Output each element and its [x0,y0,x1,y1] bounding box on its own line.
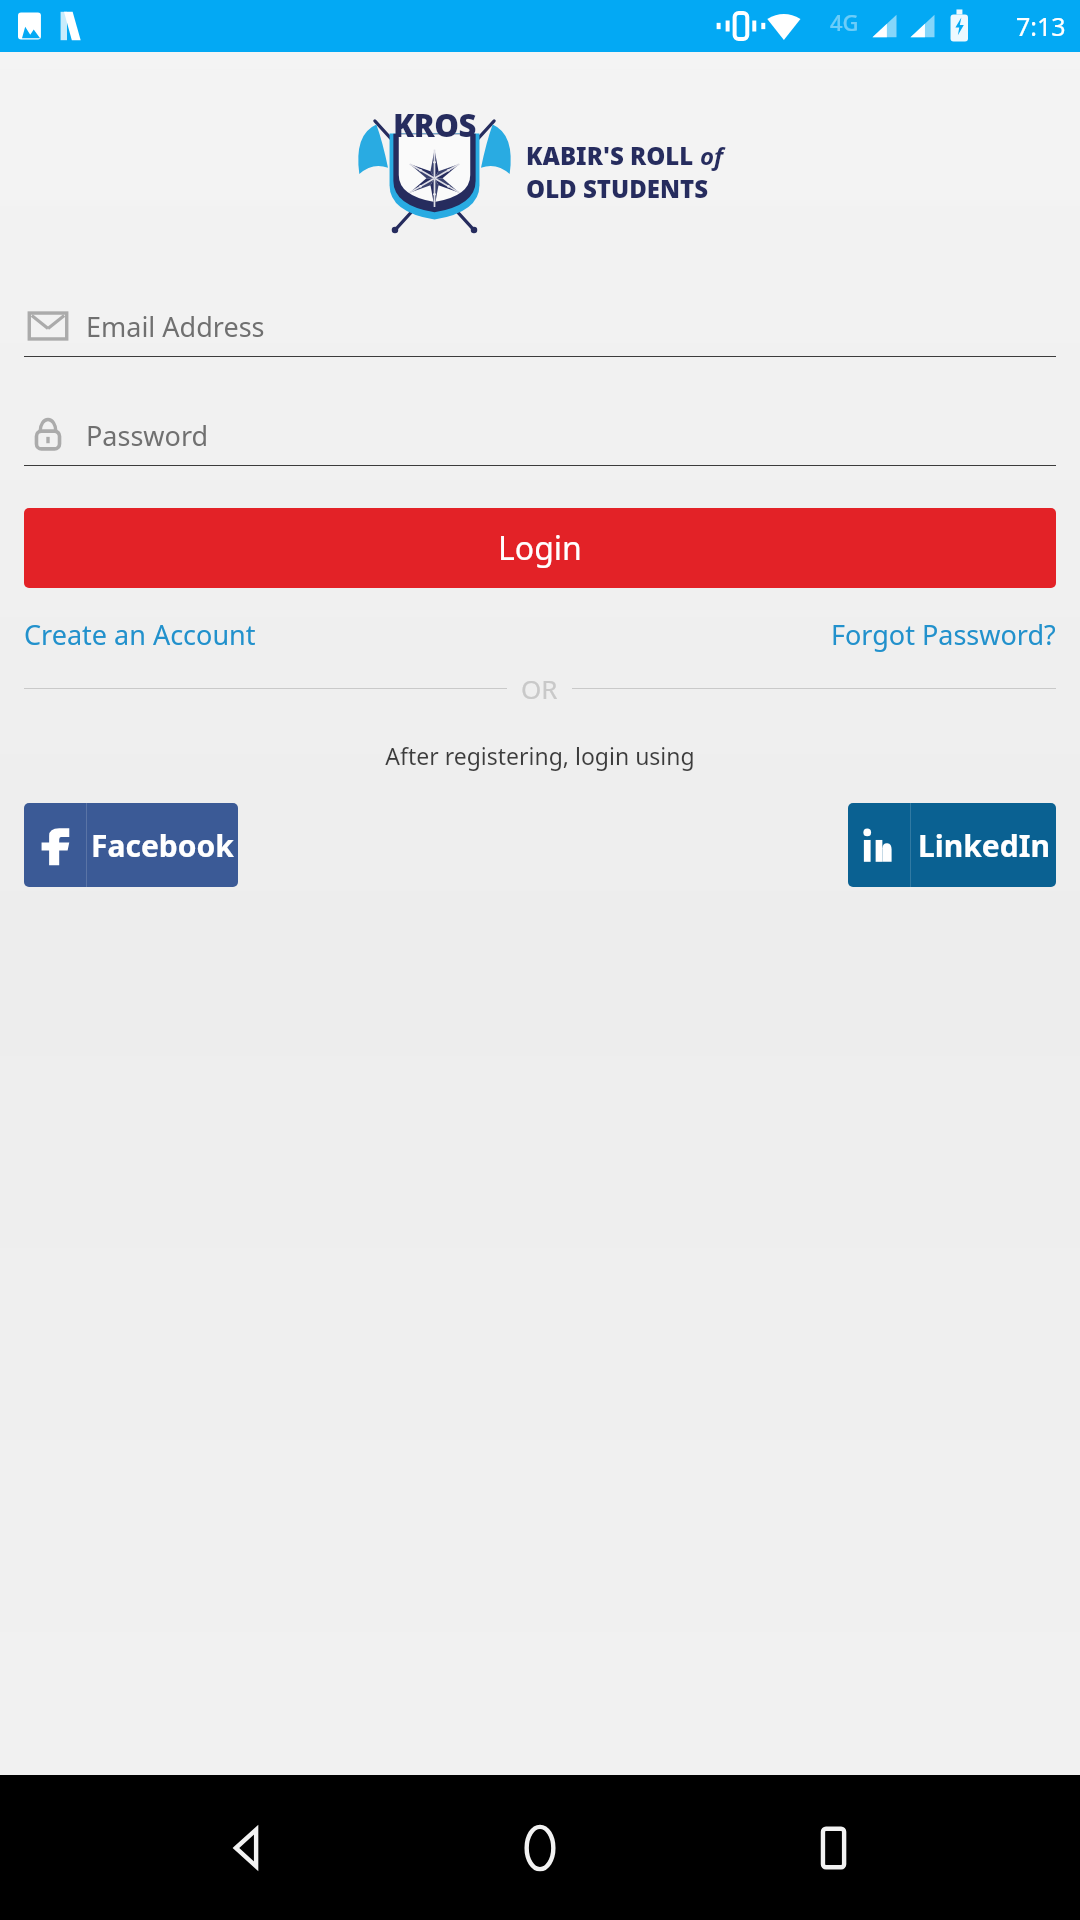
button[interactable]: Login with LinkedIn [848,803,1056,887]
staticText: LinkedIn [918,825,1050,866]
button[interactable]: Forgot Password? [827,608,1060,661]
button[interactable]: Email Address [24,302,1056,357]
staticText: OR [521,671,558,706]
staticText: 7:13 [1016,9,1066,43]
staticText: Email Address [86,308,265,345]
button[interactable]: Password [24,411,1056,466]
button[interactable]: Recent apps [786,1800,882,1896]
button[interactable]: Back [198,1800,294,1896]
button[interactable]: Home [492,1800,588,1896]
button[interactable]: Login [24,508,1056,588]
staticText: of [700,139,724,172]
staticText: KROS [393,104,476,146]
staticText: Facebook [91,825,234,866]
staticText: After registering, login using [0,740,1080,771]
staticText: Forgot Password? [831,616,1056,653]
staticText: Password [86,417,209,454]
button[interactable]: Create an Account [20,608,260,661]
staticText: OLD STUDENTS [526,172,708,205]
button[interactable]: Login with Facebook [24,803,238,887]
staticText: Create an Account [24,616,256,653]
staticText: KABIR'S ROLL [526,139,700,172]
staticText: Login [498,526,582,570]
staticText: 4G [830,7,859,37]
